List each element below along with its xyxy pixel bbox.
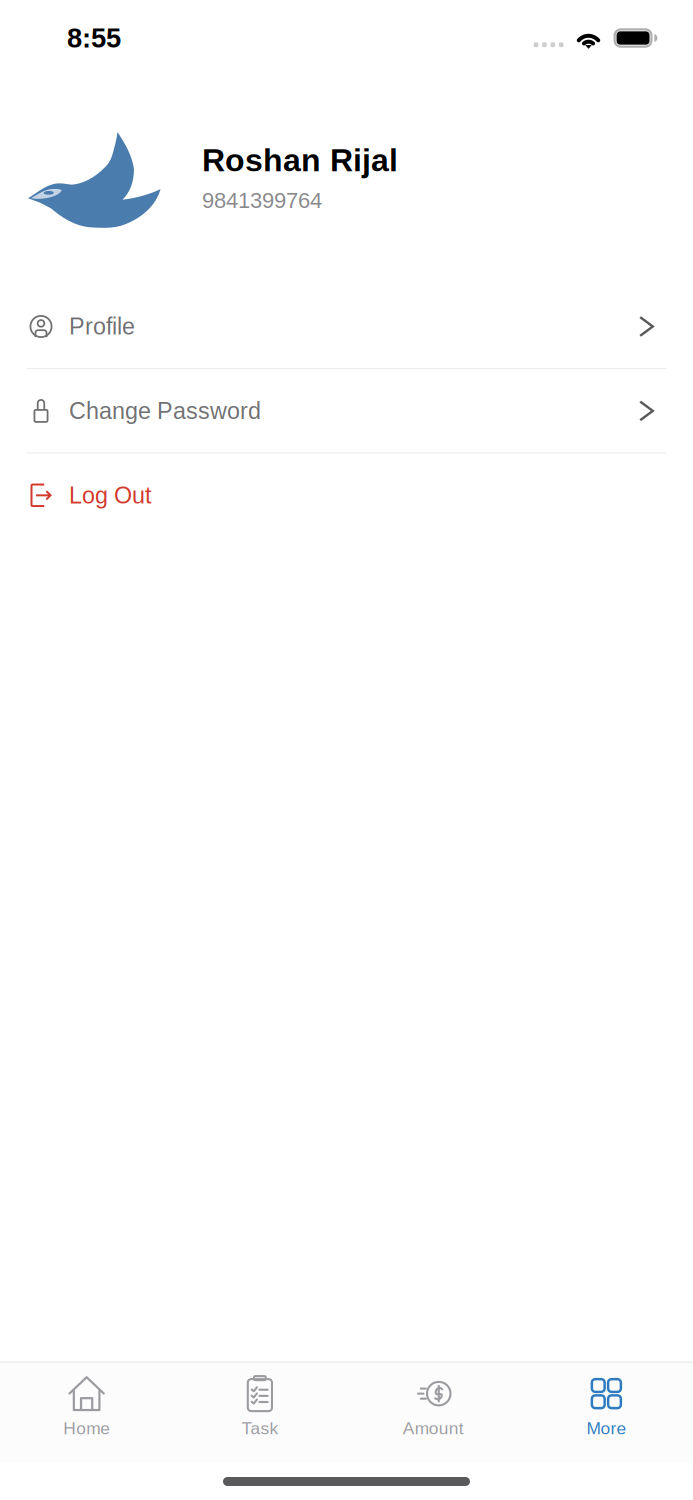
button[interactable]: Amount (346, 1363, 520, 1463)
staticText: More (586, 1419, 626, 1438)
button[interactable]: More (520, 1363, 693, 1463)
button[interactable]: Home (0, 1363, 173, 1463)
button[interactable]: Change Password (0, 369, 693, 452)
staticText: 9841399764 (202, 188, 322, 213)
staticText: Task (241, 1419, 278, 1438)
staticText: Change Password (69, 398, 261, 424)
staticText: 8:55 (67, 23, 121, 53)
staticText: Home (63, 1419, 110, 1438)
staticText: Profile (69, 313, 135, 340)
staticText: Roshan Rijal (202, 142, 398, 178)
staticText: Log Out (69, 482, 151, 508)
button[interactable]: Task (173, 1363, 346, 1463)
button[interactable]: Profile (0, 285, 693, 368)
staticText: Amount (403, 1419, 464, 1438)
button[interactable]: Log Out (0, 454, 693, 537)
